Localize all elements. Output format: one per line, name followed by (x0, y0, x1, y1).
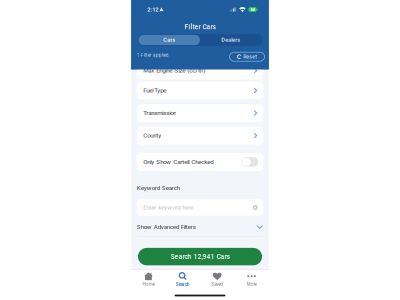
button[interactable]: More (234, 270, 269, 289)
staticText: Keyword Search (137, 184, 180, 192)
staticText: Transmission (143, 109, 176, 117)
staticText: More (247, 282, 257, 287)
staticText: County (143, 132, 161, 139)
staticText: Max Engine Size (cc/ltr) (143, 67, 205, 74)
staticText: Home (142, 282, 154, 287)
button[interactable]: Dealers (200, 35, 261, 45)
staticText: Show Advanced Filters (137, 223, 196, 231)
staticText: 84 (251, 7, 255, 12)
button[interactable]: Only Show Cartell Checked (137, 153, 263, 171)
staticText: Dealers (221, 37, 240, 43)
staticText: Search (176, 282, 190, 287)
staticText: Fuel Type (143, 87, 166, 94)
button[interactable]: Home (131, 270, 166, 289)
staticText: 2:12 (147, 6, 158, 13)
button[interactable]: Search (166, 270, 200, 289)
button[interactable]: Search 12,941 Cars (138, 248, 262, 265)
staticText: 1 Filter applied (137, 52, 169, 58)
button[interactable]: Transmission (137, 104, 263, 122)
button[interactable]: Show Advanced Filters (137, 220, 263, 234)
staticText: Saved (211, 282, 223, 287)
button[interactable]: Cars (138, 35, 200, 45)
button[interactable]: Reset (230, 49, 265, 61)
staticText: Search 12,941 Cars (170, 253, 229, 260)
button[interactable]: Enter keyword here (137, 199, 263, 216)
staticText: Cars (163, 37, 175, 43)
staticText: Only Show Cartell Checked (143, 158, 213, 166)
button[interactable]: County (137, 126, 263, 144)
staticText: Enter keyword here (143, 204, 193, 211)
button[interactable]: Saved (200, 270, 234, 289)
button[interactable]: Fuel Type (137, 81, 263, 99)
staticText: Filter Cars (184, 23, 215, 31)
staticText: Reset (243, 54, 257, 60)
